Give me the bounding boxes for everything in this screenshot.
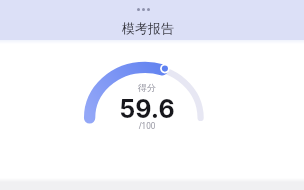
staticText: 模考报告 [38,20,258,36]
button[interactable]: More options [137,4,157,15]
staticText: 得分 [37,82,257,93]
staticText: 59.6 [37,94,257,124]
staticText: /100 [37,120,257,131]
